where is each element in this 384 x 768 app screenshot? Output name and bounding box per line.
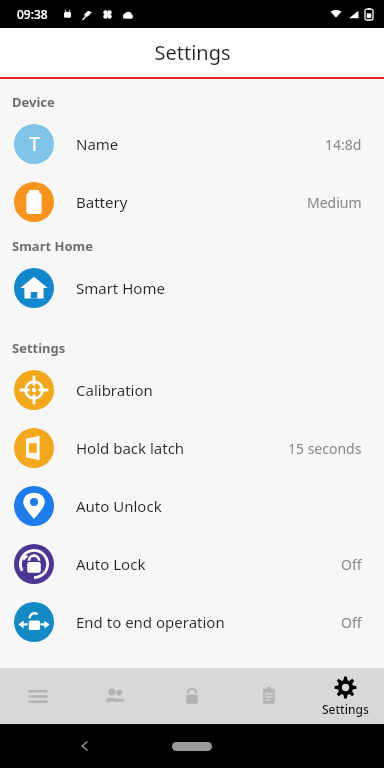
button[interactable]: Battery xyxy=(0,173,384,231)
button[interactable]: Smart Home xyxy=(0,259,384,317)
button[interactable]: People xyxy=(76,668,153,724)
staticText: Off xyxy=(341,555,362,574)
staticText: Device xyxy=(12,93,55,111)
staticText: Smart Home xyxy=(12,237,93,255)
button[interactable]: Menu xyxy=(0,668,76,724)
staticText: Settings xyxy=(12,339,66,357)
staticText: Smart Home xyxy=(76,278,370,298)
staticText: 14:8d xyxy=(325,135,362,154)
button[interactable]: Auto Unlock xyxy=(0,477,384,535)
staticText: Settings xyxy=(322,701,369,717)
button[interactable]: Calibration xyxy=(0,361,384,419)
staticText: Name xyxy=(76,134,325,154)
staticText: Hold back latch xyxy=(76,438,288,458)
staticText: End to end operation xyxy=(76,612,341,632)
button[interactable]: Lock xyxy=(153,668,230,724)
staticText: T xyxy=(29,131,40,157)
staticText: 09:38 xyxy=(17,6,48,22)
button[interactable]: Auto Lock xyxy=(0,535,384,593)
button[interactable]: Settings xyxy=(307,668,384,724)
staticText: Auto Unlock xyxy=(76,496,370,516)
staticText: Settings xyxy=(154,39,231,66)
button[interactable]: End to end operation xyxy=(0,593,384,651)
button[interactable]: Activity xyxy=(230,668,307,724)
button[interactable]: T xyxy=(0,115,384,173)
staticText: Battery xyxy=(76,192,307,212)
button[interactable]: Hold back latch xyxy=(0,419,384,477)
staticText: Calibration xyxy=(76,380,370,400)
staticText: Medium xyxy=(307,193,362,212)
staticText: Off xyxy=(341,613,362,632)
staticText: 15 seconds xyxy=(288,439,362,458)
staticText: Auto Lock xyxy=(76,554,341,574)
